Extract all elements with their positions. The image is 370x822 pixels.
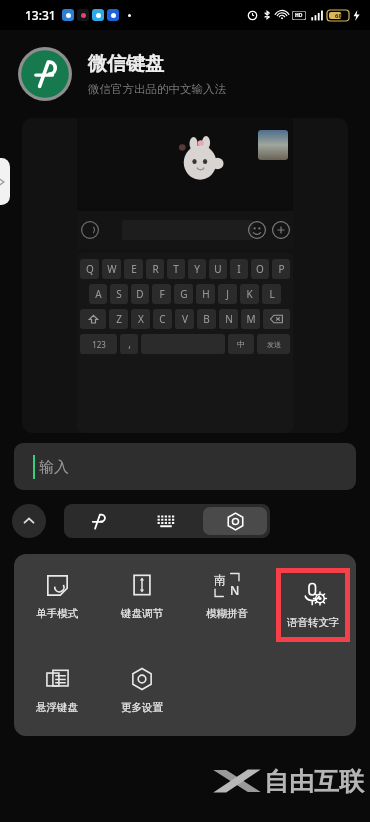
staticText: M	[246, 312, 256, 326]
button[interactable]: E	[124, 259, 143, 279]
button[interactable]: Settings	[203, 507, 267, 535]
button[interactable]: O	[251, 259, 269, 279]
staticText: P	[278, 262, 285, 276]
staticText: 自由互联	[264, 766, 364, 797]
staticText: 模糊拼音	[206, 607, 248, 620]
staticText: 悬浮键盘	[36, 701, 78, 714]
button[interactable]: K	[240, 284, 259, 304]
staticText: N	[225, 312, 233, 326]
button[interactable]: 123	[80, 334, 117, 354]
staticText: Y	[194, 262, 200, 276]
staticText: A	[95, 287, 102, 301]
staticText: C	[159, 312, 166, 326]
staticText: D	[136, 287, 144, 301]
staticText: 68	[335, 12, 342, 20]
button[interactable]: ,	[120, 334, 138, 354]
button[interactable]: 键盘调节	[99, 568, 184, 624]
staticText: T	[173, 262, 179, 276]
button[interactable]: X	[131, 309, 150, 329]
staticText: I	[237, 262, 241, 276]
button[interactable]: R	[146, 259, 164, 279]
button[interactable]: 中	[228, 334, 254, 354]
button[interactable]: Keyboard layout	[132, 504, 200, 538]
staticText: 输入	[39, 458, 69, 477]
staticText: X	[138, 312, 144, 326]
staticText: U	[214, 262, 222, 276]
staticText: 更多设置	[121, 701, 163, 714]
button[interactable]: 南	[184, 568, 270, 624]
button[interactable]: Key	[80, 309, 106, 329]
button[interactable]: 输入	[14, 443, 356, 490]
staticText: 123	[92, 339, 106, 350]
staticText: K	[246, 287, 253, 301]
staticText: G	[180, 287, 188, 301]
button[interactable]: L	[262, 284, 281, 304]
staticText: O	[256, 262, 264, 276]
staticText: 13:31	[25, 7, 56, 23]
staticText: S	[116, 287, 122, 301]
button[interactable]: T	[167, 259, 185, 279]
staticText: R	[152, 262, 159, 276]
staticText: 微信官方出品的中文输入法	[88, 82, 226, 96]
staticText: Q	[86, 262, 94, 276]
button[interactable]: F	[152, 284, 171, 304]
button[interactable]: C	[153, 309, 172, 329]
staticText: 单手模式	[36, 607, 78, 620]
button[interactable]: 语音转文字	[281, 573, 345, 637]
button[interactable]: D	[131, 284, 149, 304]
staticText: W	[107, 262, 117, 276]
button[interactable]: H	[196, 284, 215, 304]
button[interactable]: Expand panel	[0, 158, 10, 205]
staticText: N	[230, 582, 240, 598]
button[interactable]: 更多设置	[99, 662, 184, 718]
button[interactable]: J	[218, 284, 237, 304]
button[interactable]: P	[272, 259, 290, 279]
button[interactable]: I	[230, 259, 248, 279]
button[interactable]: B	[197, 309, 216, 329]
button[interactable]: N	[219, 309, 238, 329]
button[interactable]: Q	[80, 259, 99, 279]
button[interactable]: 发送	[257, 334, 290, 354]
button[interactable]: 单手模式	[14, 568, 99, 624]
staticText: J	[226, 287, 229, 301]
staticText: 发送	[267, 340, 281, 349]
staticText: Z	[116, 312, 122, 326]
button[interactable]: WeChat keyboard	[64, 504, 132, 538]
staticText: B	[203, 312, 210, 326]
button[interactable]: U	[209, 259, 227, 279]
button[interactable]: Z	[109, 309, 128, 329]
staticText: 键盘调节	[121, 607, 163, 620]
button[interactable]: G	[174, 284, 193, 304]
staticText: HD	[295, 12, 303, 19]
button[interactable]: M	[241, 309, 260, 329]
button[interactable]: V	[175, 309, 194, 329]
button[interactable]: A	[89, 284, 107, 304]
staticText: E	[131, 262, 137, 276]
staticText: 语音转文字	[287, 616, 340, 629]
staticText: L	[269, 287, 275, 301]
button[interactable]: Y	[188, 259, 206, 279]
staticText: ,	[128, 337, 131, 351]
button[interactable]: Key	[263, 309, 290, 329]
staticText: 南	[214, 572, 226, 587]
button[interactable]: W	[102, 259, 121, 279]
staticText: 微信键盘	[88, 52, 164, 76]
button[interactable]: S	[110, 284, 128, 304]
staticText: V	[182, 312, 188, 326]
staticText: F	[159, 287, 165, 301]
button[interactable]: Collapse	[12, 504, 46, 538]
button[interactable]: 悬浮键盘	[14, 662, 99, 718]
staticText: H	[202, 287, 210, 301]
staticText: 中	[237, 339, 245, 349]
